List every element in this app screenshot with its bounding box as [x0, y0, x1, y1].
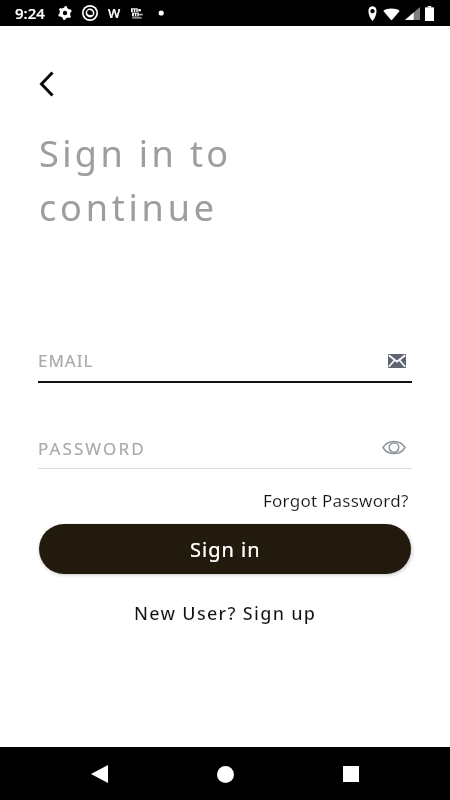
button[interactable]: Back	[75, 750, 123, 798]
button[interactable]: Sign in	[39, 524, 411, 574]
button[interactable]: Back	[25, 62, 69, 106]
staticText: W	[108, 4, 121, 22]
staticText: continue	[39, 183, 218, 232]
staticText: Sign in	[190, 536, 261, 563]
button[interactable]: Email	[382, 346, 412, 376]
button[interactable]: Forgot Password?	[263, 489, 450, 512]
button[interactable]: New User? Sign up	[134, 601, 317, 626]
button[interactable]: Recent apps	[327, 750, 375, 798]
button[interactable]: Show password	[379, 432, 409, 462]
staticText: 9:24	[15, 3, 45, 23]
staticText: Sign in to	[39, 129, 232, 178]
staticText: PASSWORD	[38, 437, 382, 460]
button[interactable]: Home	[201, 750, 249, 798]
staticText: EMAIL	[38, 349, 382, 372]
